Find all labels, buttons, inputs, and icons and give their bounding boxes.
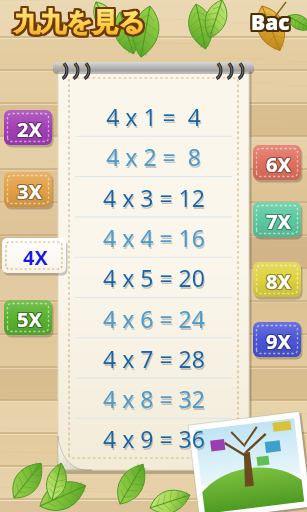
staticText: 9X (265, 328, 290, 355)
staticText: 九九を見る (13, 7, 145, 40)
staticText: 九九を見る (13, 6, 145, 39)
staticText: Back (250, 8, 302, 38)
staticText: 九九を見る (14, 5, 146, 38)
staticText: 6X (267, 150, 292, 177)
staticText: 7X (267, 207, 292, 234)
staticText: Back (251, 9, 303, 39)
staticText: 4 x 5 = 20 (104, 264, 206, 295)
staticText: 2X (16, 117, 41, 144)
staticText: 九九を見る (14, 8, 146, 41)
button[interactable]: 4 x 4 = 16 (62, 217, 245, 257)
staticText: 九九を見る (16, 8, 148, 41)
staticText: 9X (267, 328, 292, 355)
staticText: Back (253, 7, 305, 37)
staticText: 5X (17, 305, 42, 332)
button[interactable]: 4 x 3 = 12 (62, 177, 245, 217)
staticText: Back (253, 8, 305, 38)
staticText: 9X (266, 329, 291, 356)
staticText: Back (252, 6, 304, 36)
staticText: Back (249, 7, 301, 37)
staticText: Back (249, 6, 301, 36)
staticText: 7X (267, 208, 292, 235)
button[interactable]: 4 x 2 = 8 (62, 136, 245, 176)
staticText: 8X (265, 269, 290, 296)
staticText: 9X (266, 328, 291, 355)
button[interactable]: 4 x 1 = 4 (62, 96, 245, 136)
staticText: 4 x 3 = 12 (104, 184, 206, 215)
staticText: 8X (267, 269, 292, 296)
staticText: 4 x 4 = 16 (103, 222, 205, 253)
button[interactable]: 4 x 5 = 20 (62, 257, 245, 297)
staticText: 5X (17, 307, 42, 334)
button[interactable]: 4 x 9 = 36 (62, 418, 245, 458)
button[interactable]: 4 x 8 = 32 (62, 378, 245, 418)
button[interactable]: 9X (253, 322, 303, 360)
staticText: 4 x 3 = 12 (103, 182, 205, 213)
staticText: 2X (17, 117, 42, 144)
staticText: 九九を見る (15, 7, 147, 40)
staticText: 九九を見る (15, 8, 147, 41)
staticText: 6X (266, 150, 291, 177)
staticText: 5X (16, 306, 41, 333)
staticText: Back (252, 8, 304, 38)
staticText: 4 x 6 = 24 (103, 303, 205, 334)
staticText: 6X (267, 152, 292, 179)
staticText: 6X (266, 151, 291, 178)
button[interactable]: 3X (4, 172, 54, 210)
staticText: 7X (266, 209, 291, 236)
staticText: 3X (18, 177, 43, 204)
staticText: 4 x 7 = 28 (103, 343, 205, 374)
staticText: 4 x 5 = 20 (103, 262, 205, 293)
staticText: 3X (17, 179, 42, 206)
staticText: 8X (266, 268, 291, 295)
staticText: Back (253, 6, 305, 36)
staticText: 5X (17, 306, 42, 333)
staticText: 九九を見る (14, 7, 146, 40)
staticText: 5X (18, 307, 43, 334)
staticText: 4 x 2 = 8 (106, 141, 201, 172)
staticText: 7X (266, 207, 291, 234)
staticText: Back (250, 7, 302, 37)
button[interactable]: 2X (4, 110, 54, 148)
staticText: Back (249, 10, 301, 40)
button[interactable]: 4X (2, 238, 68, 276)
staticText: 九九を見る (12, 4, 144, 37)
staticText: 9X (267, 329, 292, 356)
staticText: 九九を見る (15, 5, 147, 38)
staticText: 4 x 1 = 4 (107, 103, 202, 134)
staticText: 2X (18, 116, 43, 143)
staticText: 九九を見る (16, 5, 148, 38)
staticText: 九九を見る (15, 4, 147, 37)
staticText: Back (251, 7, 303, 37)
staticText: 8X (266, 269, 291, 296)
staticText: 8X (267, 267, 292, 294)
button[interactable]: 6X (253, 145, 303, 183)
staticText: 5X (18, 305, 43, 332)
button[interactable]: 4 x 7 = 28 (62, 338, 245, 378)
staticText: Back (251, 6, 303, 36)
staticText: 2X (17, 115, 42, 142)
staticText: 6X (265, 151, 290, 178)
button[interactable]: 7X (253, 202, 303, 240)
staticText: 九九を見る (12, 8, 144, 41)
button[interactable]: 5X (4, 300, 54, 338)
staticText: 3X (16, 177, 41, 204)
staticText: 4 x 9 = 36 (104, 425, 206, 456)
staticText: 7X (266, 208, 291, 235)
staticText: Back (252, 7, 304, 37)
staticText: 九九を見る (15, 6, 147, 39)
staticText: 2X (18, 115, 43, 142)
staticText: 九九を見る (13, 5, 145, 38)
staticText: 9X (266, 327, 291, 354)
staticText: 九九を見る (14, 6, 146, 39)
staticText: 8X (266, 267, 291, 294)
staticText: 9X (267, 327, 292, 354)
button[interactable]: 4 x 6 = 24 (62, 298, 245, 338)
button[interactable]: Back (251, 8, 303, 38)
staticText: 4 x 9 = 36 (103, 423, 205, 454)
button[interactable]: 8X (253, 262, 303, 300)
staticText: 7X (265, 208, 290, 235)
staticText: 九九を見る (12, 7, 144, 40)
staticText: Back (251, 10, 303, 40)
staticText: 8X (265, 267, 290, 294)
